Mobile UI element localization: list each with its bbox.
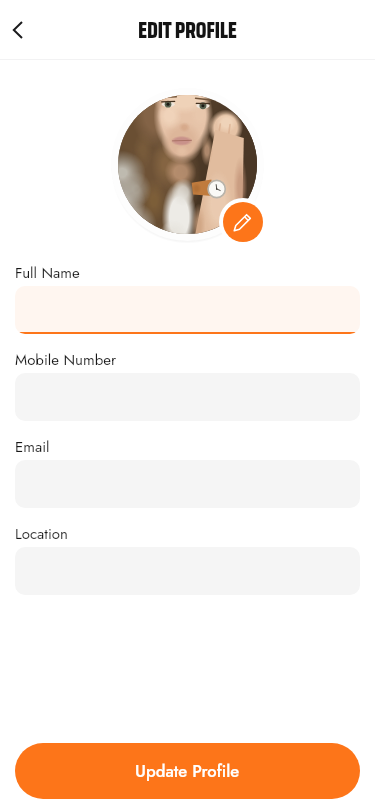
button[interactable] <box>15 286 360 334</box>
staticText: Update Profile <box>135 759 240 783</box>
button[interactable]: Update Profile <box>15 743 360 799</box>
staticText: Location <box>15 523 68 545</box>
staticText: Full Name <box>15 262 80 284</box>
staticText: Email <box>15 436 50 458</box>
button[interactable]: Back <box>0 8 44 52</box>
staticText: Mobile Number <box>15 349 117 371</box>
staticText: EDIT PROFILE <box>138 13 237 48</box>
button[interactable]: Change photo <box>223 202 263 242</box>
